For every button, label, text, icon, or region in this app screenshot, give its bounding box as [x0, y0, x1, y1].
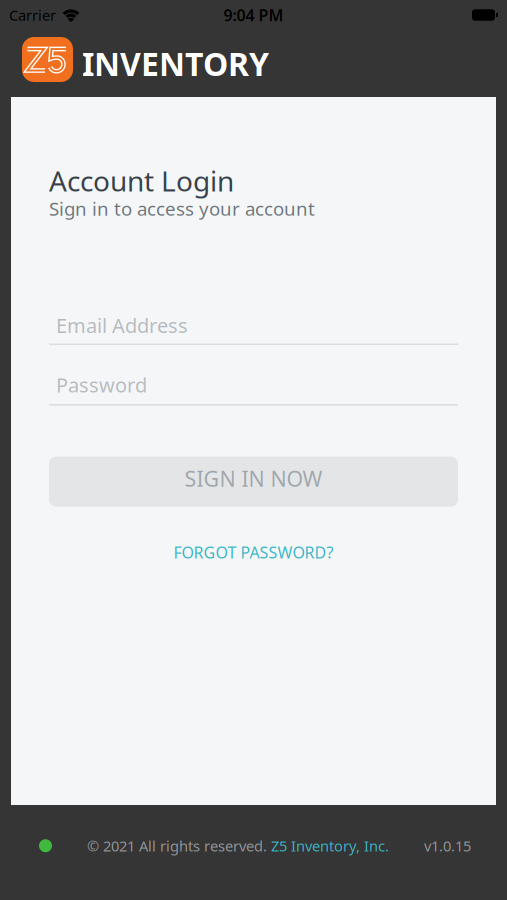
staticText: Email Address: [56, 312, 188, 339]
button[interactable]: Password: [49, 371, 458, 406]
staticText: v1.0.15: [424, 836, 471, 855]
staticText: INVENTORY: [82, 42, 269, 85]
staticText: Account Login: [49, 162, 234, 199]
staticText: Carrier: [9, 5, 56, 25]
button[interactable]: Z5 Inventory, Inc.: [271, 836, 389, 855]
staticText: SIGN IN NOW: [184, 464, 322, 493]
button[interactable]: SIGN IN NOW: [49, 457, 458, 507]
staticText: FORGOT PASSWORD?: [173, 542, 333, 563]
staticText: Sign in to access your account: [49, 196, 315, 221]
staticText: 9:04 PM: [223, 4, 283, 26]
staticText: Password: [56, 371, 147, 398]
button[interactable]: Email Address: [49, 312, 458, 345]
button[interactable]: FORGOT PASSWORD?: [173, 542, 333, 563]
staticText: Z5 Inventory, Inc.: [271, 836, 389, 855]
staticText: © 2021 All rights reserved.: [87, 836, 271, 855]
